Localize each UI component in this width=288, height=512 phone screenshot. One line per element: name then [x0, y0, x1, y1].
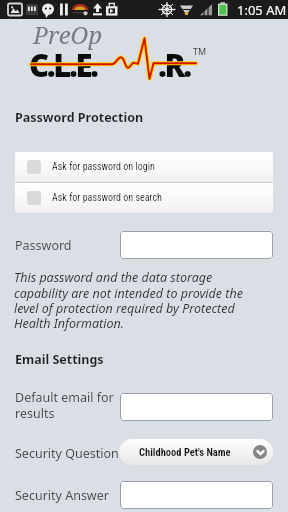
staticText: Password	[15, 237, 72, 254]
button[interactable]	[120, 231, 273, 259]
staticText: Childhood Pet's Name	[139, 446, 231, 458]
staticText: .R.	[158, 44, 190, 86]
staticText: Ask for password on login	[52, 161, 155, 173]
staticText: PreOp	[33, 18, 103, 51]
other: Open dropdown	[253, 445, 267, 459]
button[interactable]: Ask for password on login	[15, 152, 273, 182]
staticText: TM	[193, 45, 207, 57]
button[interactable]	[120, 393, 273, 421]
button[interactable]	[120, 481, 273, 509]
staticText: 1:05 AM	[237, 1, 287, 19]
staticText: C.L.E.	[29, 44, 97, 86]
staticText: This password and the data storage capab…	[14, 269, 243, 332]
staticText: Default email for results	[15, 389, 114, 422]
staticText: Security Question	[15, 445, 119, 462]
staticText: Email Settings	[15, 351, 104, 368]
staticText: Security Answer	[15, 487, 109, 504]
staticText: Ask for password on search	[52, 192, 162, 204]
staticText: Password Protection	[15, 109, 144, 126]
button[interactable]: Ask for password on search	[15, 183, 273, 213]
button[interactable]: Childhood Pet's Name	[119, 439, 273, 465]
